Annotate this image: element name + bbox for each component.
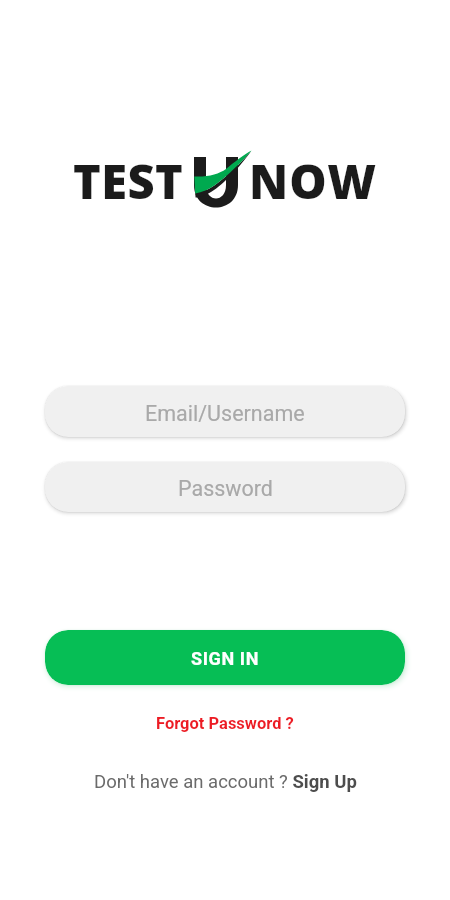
- staticText: TEST: [73, 149, 184, 213]
- button[interactable]: SIGN IN: [45, 630, 405, 685]
- button[interactable]: Don't have an account ? Sign Up: [88, 768, 363, 796]
- staticText: SIGN IN: [191, 648, 259, 669]
- button[interactable]: Forgot Password ?: [150, 711, 300, 736]
- staticText: Password: [178, 476, 273, 501]
- staticText: NOW: [249, 149, 378, 213]
- button[interactable]: Password: [45, 462, 405, 512]
- button[interactable]: Email/Username: [45, 386, 405, 437]
- staticText: Email/Username: [145, 401, 305, 426]
